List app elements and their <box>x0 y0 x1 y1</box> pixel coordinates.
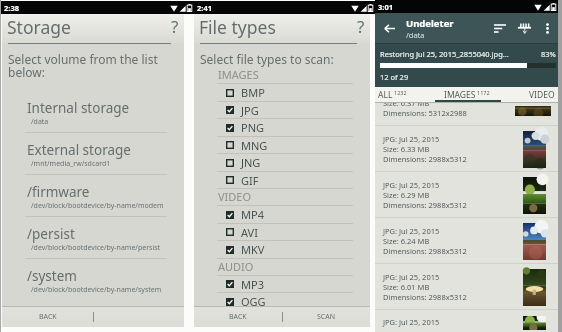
button[interactable]: External storage <box>2 133 184 175</box>
staticText: Select file types to scan: <box>200 51 334 67</box>
button[interactable]: /firmware <box>2 175 184 217</box>
staticText: Undeleter <box>406 17 454 30</box>
button[interactable]: VIDEO <box>497 87 558 102</box>
staticText: /dev/block/bootdevice/by-name/persist <box>31 243 161 253</box>
button[interactable]: /system <box>2 259 184 301</box>
button[interactable]: More options <box>536 17 558 39</box>
button[interactable]: MNG <box>194 137 370 154</box>
staticText: JPG: Jul 25, 2015 Size: 6.33 MB Dimensio… <box>383 134 467 164</box>
staticText: /mnt/media_rw/sdcard1 <box>31 159 111 169</box>
button[interactable]: JPG: Jul 25, 2015 Size: 6.29 MB Dimensio… <box>375 172 558 218</box>
button[interactable]: AVI <box>194 224 370 241</box>
staticText: GIF <box>241 173 259 188</box>
button[interactable]: /persist <box>2 217 184 259</box>
staticText: SCAN <box>317 312 336 322</box>
button[interactable]: GIF <box>194 172 370 189</box>
staticText: Storage <box>7 15 71 39</box>
staticText: 2:38 <box>4 3 19 13</box>
staticText: /persist <box>27 225 75 243</box>
button[interactable]: JPG <box>194 102 370 119</box>
staticText: JPG: Jul 25, 2015 <box>383 317 440 327</box>
staticText: 12 of 29 <box>380 72 409 82</box>
staticText: ALL <box>378 89 393 101</box>
staticText: Internal storage <box>27 99 130 117</box>
button[interactable]: PNG <box>194 119 370 137</box>
button[interactable]: MP3 <box>194 276 370 293</box>
staticText: External storage <box>27 141 131 159</box>
staticText: AUDIO <box>218 259 254 274</box>
button[interactable]: BMP <box>194 84 370 102</box>
staticText: 3:01 <box>378 2 393 12</box>
button[interactable]: JPG: Jul 25, 2015 Size: 6.24 MB Dimensio… <box>375 218 558 264</box>
button[interactable]: MKV <box>194 241 370 259</box>
staticText: VIDEO <box>529 89 555 101</box>
button[interactable]: SCAN <box>282 307 370 327</box>
staticText: VIDEO <box>218 189 252 204</box>
button[interactable]: Back <box>375 14 404 43</box>
staticText: JPG: Jul 25, 2015 Size: 6.24 MB Dimensio… <box>383 226 467 256</box>
button[interactable]: JNG <box>194 154 370 172</box>
button[interactable]: JPG: Jul 25, 2015 Size: 6.01 MB Dimensio… <box>375 264 558 310</box>
button[interactable]: Size: 6.37 MB Dimensions: 5312x2988 <box>375 103 558 126</box>
staticText: IMAGES <box>218 67 259 82</box>
staticText: /system <box>27 267 77 285</box>
button[interactable]: BACK <box>194 307 282 327</box>
staticText: BMP <box>241 85 265 100</box>
staticText: MKV <box>241 242 265 257</box>
button[interactable]: Help <box>351 15 371 35</box>
staticText: 1172 <box>477 89 490 96</box>
staticText: File types <box>199 15 276 39</box>
staticText: Restoring Jul 25, 2015_2855040.jpg... <box>380 49 509 59</box>
staticText: 83% <box>541 49 556 59</box>
staticText: ? <box>171 15 179 35</box>
button[interactable]: ALL <box>375 87 436 102</box>
button[interactable]: BACK <box>2 307 93 327</box>
staticText: MNG <box>241 138 268 153</box>
staticText: Select volume from the list below: <box>8 51 158 81</box>
button[interactable]: JPG: Jul 25, 2015 Size: 6.33 MB Dimensio… <box>375 126 558 172</box>
staticText: AVI <box>241 225 258 240</box>
staticText: JPG: Jul 25, 2015 Size: 6.01 MB Dimensio… <box>383 272 467 302</box>
staticText: /data <box>31 117 49 127</box>
staticText: 1232 <box>394 89 407 96</box>
button[interactable]: Filter <box>512 16 536 40</box>
staticText: OGG <box>241 294 266 309</box>
button[interactable]: OGG <box>194 293 370 311</box>
staticText: 2:41 <box>197 3 212 13</box>
staticText: /dev/block/bootdevice/by-name/system <box>31 285 162 295</box>
staticText: MP3 <box>241 277 264 292</box>
button[interactable]: JPG: Jul 25, 2015 <box>375 310 558 330</box>
staticText: MP4 <box>241 207 264 222</box>
staticText: JPG: Jul 25, 2015 Size: 6.29 MB Dimensio… <box>383 180 467 210</box>
staticText: /firmware <box>27 183 90 201</box>
button[interactable]: Sort <box>488 16 512 40</box>
button[interactable]: Internal storage <box>2 91 184 133</box>
button[interactable]: MP4 <box>194 206 370 224</box>
staticText: JNG <box>241 155 261 170</box>
button[interactable]: Help <box>165 15 185 35</box>
staticText: PNG <box>241 120 265 135</box>
staticText: BACK <box>229 312 247 322</box>
button[interactable] <box>93 307 184 327</box>
staticText: BACK <box>39 312 57 322</box>
staticText: /dev/block/bootdevice/by-name/modem <box>31 201 164 211</box>
staticText: IMAGES <box>444 89 476 101</box>
staticText: JPG <box>241 103 259 118</box>
staticText: Size: 6.37 MB Dimensions: 5312x2988 <box>383 103 467 118</box>
button[interactable]: IMAGES <box>436 87 497 102</box>
staticText: /data <box>406 30 425 40</box>
staticText: ? <box>357 15 365 35</box>
